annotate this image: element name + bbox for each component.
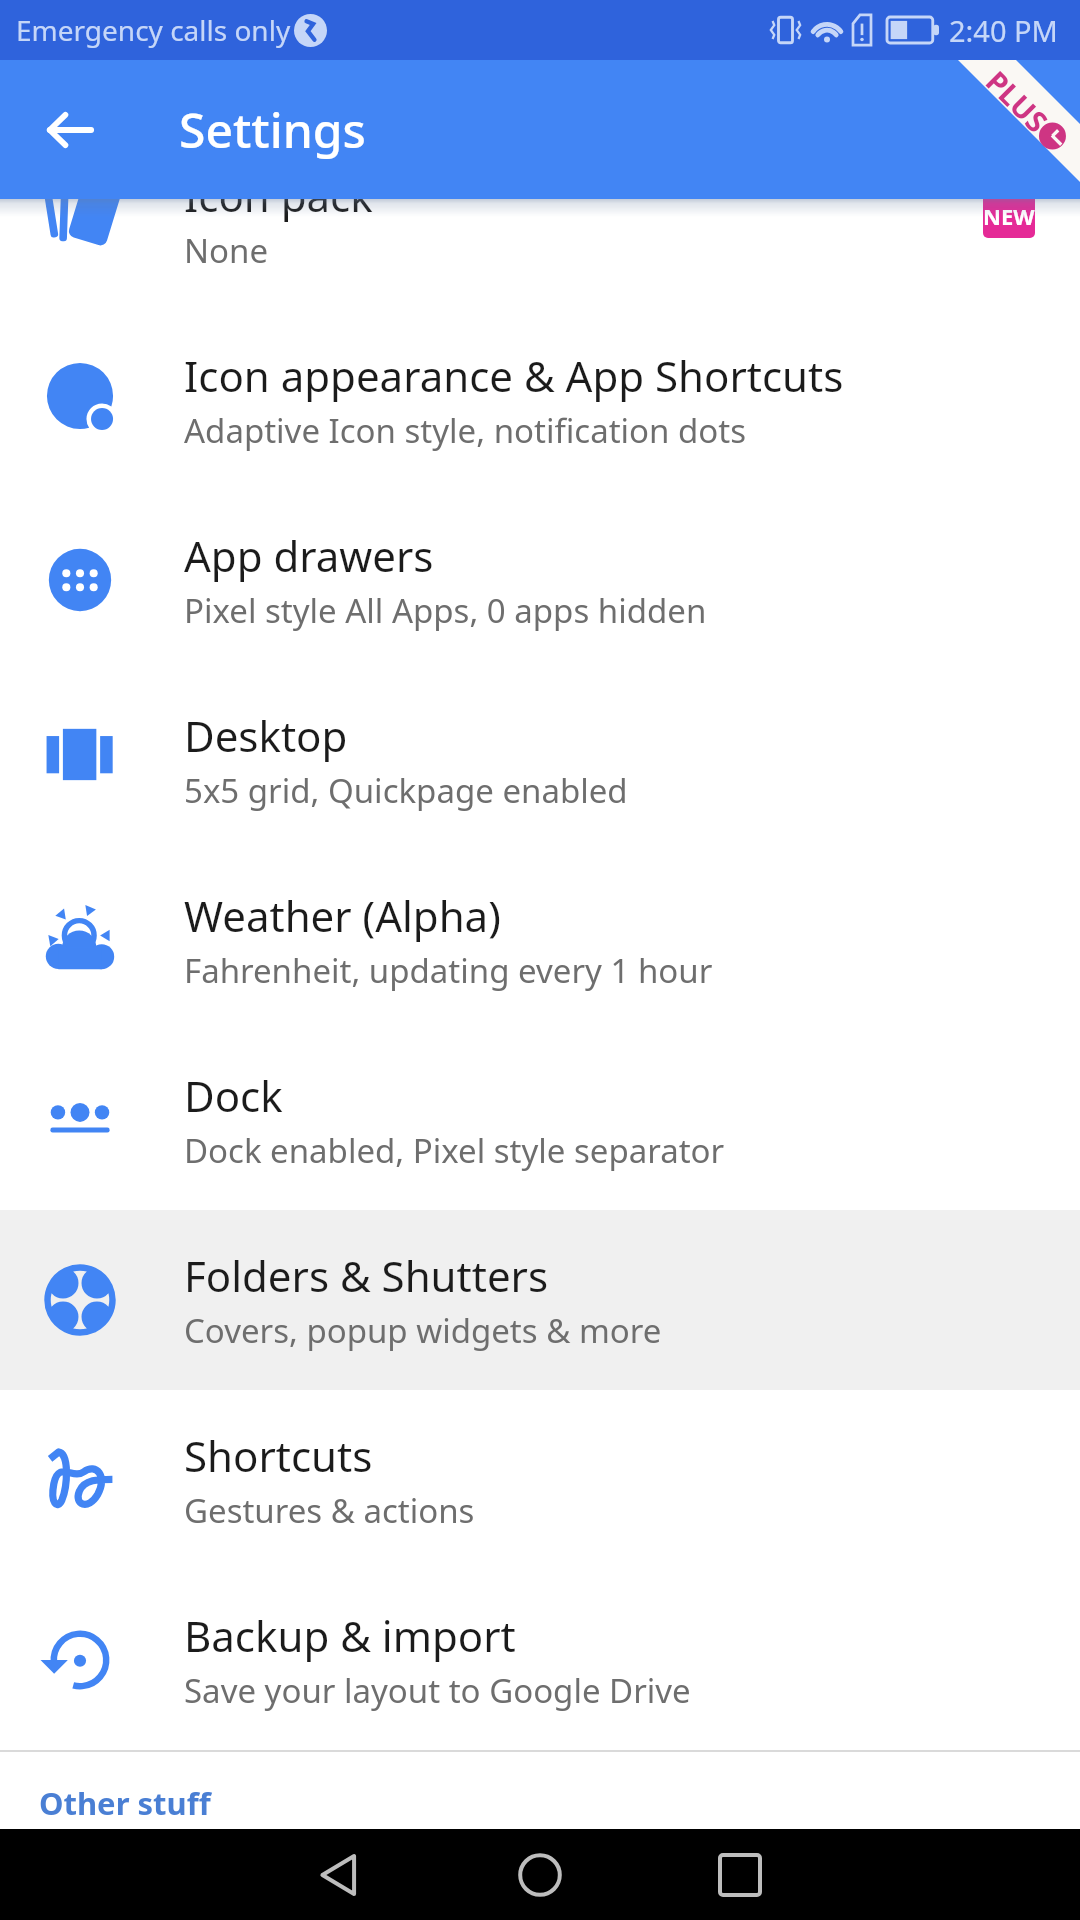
button[interactable]: Weather (Alpha) (0, 850, 1080, 1030)
staticText: Desktop (184, 707, 348, 764)
button[interactable]: Dock (0, 1030, 1080, 1210)
button[interactable]: Home (496, 1831, 584, 1919)
staticText: Dock enabled, Pixel style separator (184, 1128, 725, 1173)
button[interactable]: Back (296, 1831, 384, 1919)
staticText: Folders & Shutters (184, 1247, 549, 1304)
button[interactable]: Other stuff (0, 1752, 1080, 1831)
staticText: Weather (Alpha) (184, 887, 501, 944)
staticText: Other stuff (39, 1782, 211, 1824)
staticText: Pixel style All Apps, 0 apps hidden (184, 588, 707, 633)
button[interactable]: App drawers (0, 490, 1080, 670)
button[interactable]: Icon appearance & App Shortcuts (0, 310, 1080, 490)
staticText: Gestures & actions (184, 1488, 475, 1533)
button[interactable]: Recent apps (696, 1831, 784, 1919)
staticText: NEW (983, 201, 1035, 231)
staticText: Dock (184, 1067, 283, 1124)
button[interactable]: Folders & Shutters (0, 1210, 1080, 1390)
staticText: 5x5 grid, Quickpage enabled (184, 768, 628, 813)
staticText: Settings (179, 97, 366, 162)
button[interactable]: Navigate up (22, 82, 118, 178)
staticText: Icon appearance & App Shortcuts (184, 347, 844, 404)
staticText: Covers, popup widgets & more (184, 1308, 662, 1353)
staticText: Shortcuts (184, 1427, 373, 1484)
staticText: Icon pack (184, 167, 373, 224)
staticText: Fahrenheit, updating every 1 hour (184, 948, 713, 993)
button[interactable]: Icon pack (0, 130, 1080, 310)
button[interactable]: Backup & import (0, 1570, 1080, 1750)
staticText: Emergency calls only (16, 11, 291, 49)
staticText: App drawers (184, 527, 434, 584)
staticText: Save your layout to Google Drive (184, 1668, 691, 1713)
button[interactable]: Shortcuts (0, 1390, 1080, 1570)
staticText: 2:40 PM (949, 11, 1058, 50)
button[interactable]: Desktop (0, 670, 1080, 850)
button[interactable]: Nova Launcher Plus (950, 60, 1080, 199)
staticText: Backup & import (184, 1607, 516, 1664)
staticText: Adaptive Icon style, notification dots (184, 408, 746, 453)
staticText: None (184, 228, 269, 273)
staticText: PLUS (978, 62, 1057, 140)
